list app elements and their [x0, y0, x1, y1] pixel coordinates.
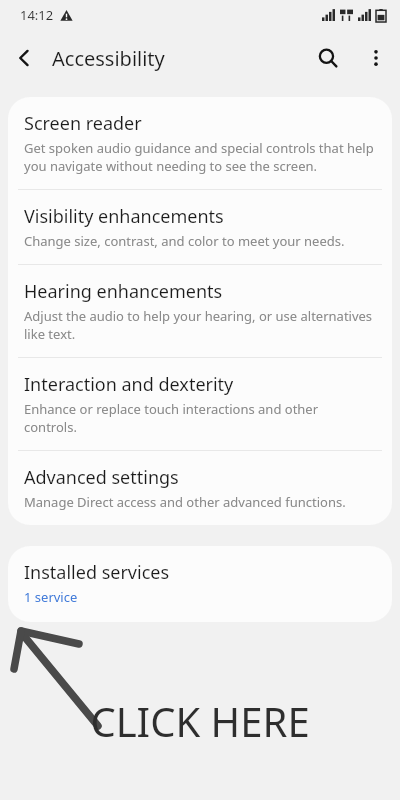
- button[interactable]: Search: [304, 34, 352, 82]
- button[interactable]: Back: [0, 34, 48, 82]
- staticText: 1 service: [24, 588, 78, 606]
- staticText: Adjust the audio to help your hearing, o…: [24, 307, 374, 343]
- button[interactable]: Screen reader: [8, 97, 392, 189]
- staticText: Screen reader: [24, 111, 142, 136]
- staticText: Accessibility: [52, 45, 165, 72]
- button[interactable]: Interaction and dexterity: [8, 358, 392, 450]
- button[interactable]: Advanced settings: [8, 451, 392, 525]
- button[interactable]: More options: [352, 34, 400, 82]
- staticText: CLICK HERE: [0, 694, 400, 748]
- button[interactable]: Installed services: [8, 546, 392, 622]
- staticText: Enhance or replace touch interactions an…: [24, 400, 374, 436]
- staticText: Installed services: [24, 560, 170, 585]
- staticText: Interaction and dexterity: [24, 372, 234, 397]
- staticText: Get spoken audio guidance and special co…: [24, 139, 374, 175]
- button[interactable]: Visibility enhancements: [8, 190, 392, 264]
- staticText: Advanced settings: [24, 465, 179, 490]
- staticText: 14:12: [20, 6, 54, 24]
- staticText: Manage Direct access and other advanced …: [24, 493, 346, 511]
- staticText: Hearing enhancements: [24, 279, 223, 304]
- button[interactable]: Hearing enhancements: [8, 265, 392, 357]
- staticText: Visibility enhancements: [24, 204, 224, 229]
- staticText: Change size, contrast, and color to meet…: [24, 232, 345, 250]
